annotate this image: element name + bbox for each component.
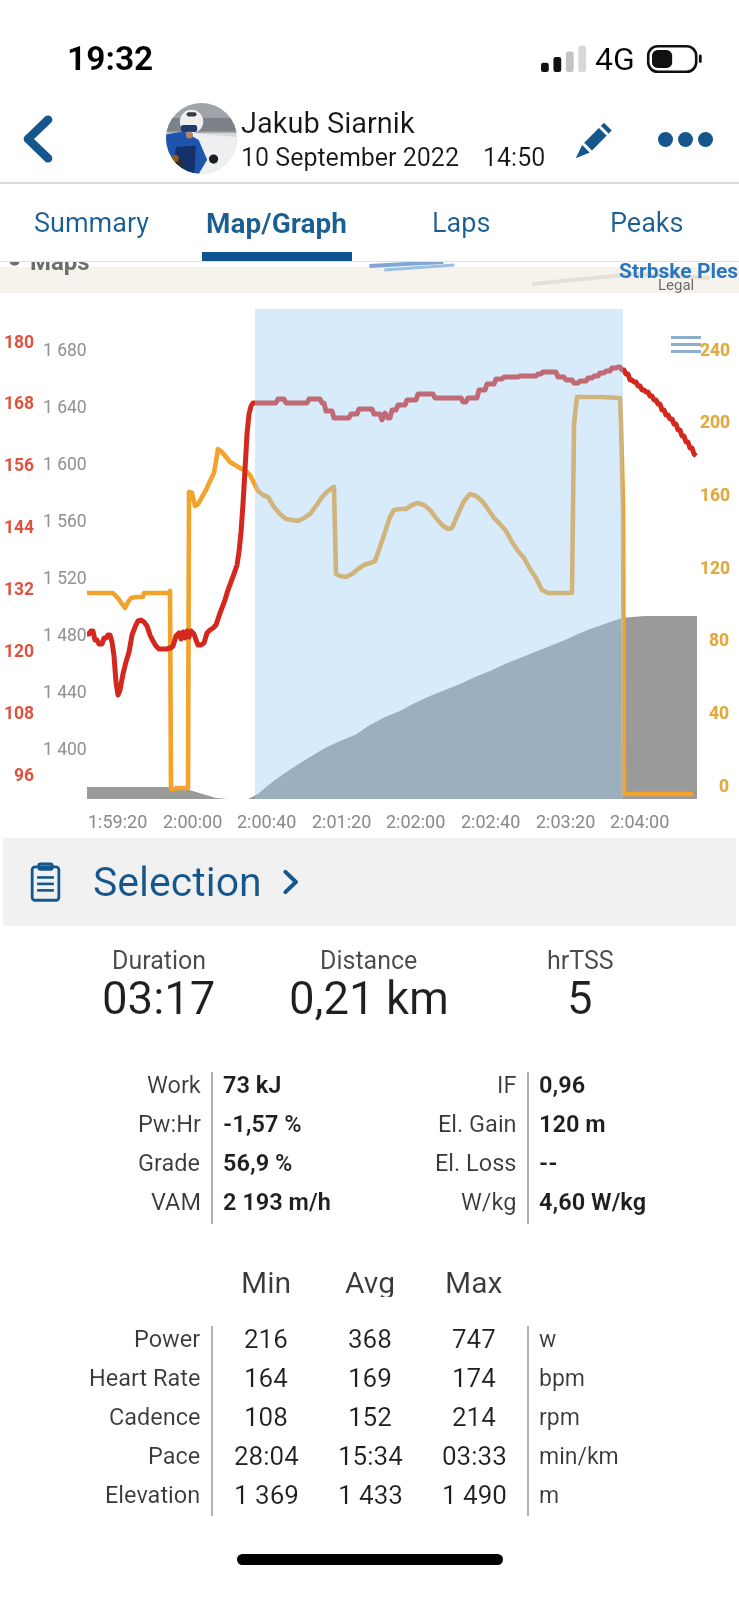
button[interactable]: More options [645,99,725,179]
staticText: 03:17 [102,972,216,1025]
staticText: 174 [452,1363,496,1393]
staticText: VAM [151,1188,201,1216]
button[interactable]: Summary [0,184,184,262]
staticText: 108 [244,1402,288,1432]
staticText: 10 September 2022 [241,143,459,172]
staticText: Max [445,1265,503,1297]
staticText: 4,60 W/kg [539,1188,647,1216]
staticText: W/kg [461,1188,517,1216]
staticText: 216 [244,1324,288,1354]
staticText: 180 [4,332,35,353]
staticText: 1 440 [43,682,87,703]
staticText: Min [241,1265,292,1297]
staticText: Peaks [610,207,684,239]
staticText: Distance [320,946,418,975]
staticText: El. Loss [435,1149,517,1177]
staticText: Summary [34,207,150,239]
staticText: 28:04 [234,1441,299,1471]
staticText: -1,57 % [223,1110,302,1138]
staticText: w [539,1326,557,1353]
staticText: min/km [539,1443,619,1470]
staticText: 2:04:00 [610,811,670,832]
staticText: Pw:Hr [138,1110,201,1138]
staticText: 1 680 [43,340,87,361]
staticText: 2:02:00 [386,811,446,832]
staticText: 15:34 [338,1441,403,1471]
staticText: rpm [539,1404,580,1431]
staticText: 1 520 [43,568,87,589]
staticText: Grade [138,1149,201,1177]
staticText: 169 [348,1363,392,1393]
staticText: Jakub Siarnik [241,106,415,140]
staticText: 40 [709,703,730,724]
staticText: 1:59:20 [88,811,148,832]
staticText: 1 480 [43,625,87,646]
button[interactable]: Chart options [664,329,708,359]
staticText: 03:33 [442,1441,507,1471]
staticText: 156 [4,455,35,476]
staticText: 1 400 [43,739,87,760]
staticText: 0 [719,776,730,797]
staticText: Laps [432,207,491,239]
staticText: 0,96 [539,1071,586,1099]
staticText: Power [134,1325,201,1353]
staticText: 1 600 [43,454,87,475]
staticText: 2:02:40 [461,811,521,832]
staticText: 144 [4,517,35,538]
staticText: 2 193 m/h [223,1188,331,1216]
staticText: hrTSS [547,946,614,975]
button[interactable]: Peaks [554,184,739,262]
staticText: 2:00:00 [163,811,223,832]
staticText: Cadence [109,1403,201,1431]
button[interactable]: Laps [369,184,554,262]
staticText: El. Gain [438,1110,517,1138]
staticText: 4G [595,40,635,78]
staticText: 56,9 % [223,1149,293,1177]
button[interactable]: Selection [3,838,736,926]
button[interactable]: Back [0,93,76,184]
staticText: 240 [700,340,730,361]
staticText: Duration [112,946,207,975]
staticText: 160 [700,485,730,506]
staticText: 1 369 [234,1480,299,1510]
staticText: Heart Rate [89,1364,201,1392]
staticText: bpm [539,1365,585,1392]
staticText: 1 433 [338,1480,403,1510]
staticText: Map/Graph [206,207,347,240]
staticText: 214 [452,1402,496,1432]
staticText: 1 490 [442,1480,507,1510]
staticText: 1 640 [43,397,87,418]
staticText: Work [147,1071,201,1099]
staticText: 120 m [539,1110,606,1138]
staticText: 152 [348,1402,392,1432]
staticText: m [539,1482,560,1509]
staticText: -- [539,1149,558,1177]
staticText: Avg [345,1265,396,1297]
staticText: 96 [14,765,35,786]
staticText: 14:50 [483,143,546,172]
staticText: 2:01:20 [312,811,372,832]
staticText: 5 [567,972,593,1025]
staticText: Elevation [105,1481,201,1509]
staticText: 368 [348,1324,392,1354]
staticText: IF [497,1071,517,1099]
button[interactable]: Edit [557,102,631,176]
staticText: 2:03:20 [536,811,596,832]
button[interactable]: Map/Graph [184,184,369,262]
staticText: 168 [4,393,35,414]
staticText: 73 kJ [223,1071,282,1099]
staticText: 120 [4,641,35,662]
staticText: Maps [30,262,90,276]
staticText: 747 [452,1324,496,1354]
staticText: Strbske Ples [619,262,739,284]
staticText: 1 560 [43,511,87,532]
staticText: Selection [93,858,262,906]
staticText: Pace [148,1442,201,1470]
staticText: 132 [4,579,35,600]
staticText: 164 [244,1363,288,1393]
staticText: Legal [658,276,695,293]
staticText: 19:32 [67,39,154,78]
staticText: 108 [4,703,35,724]
staticText: 2:00:40 [237,811,297,832]
staticText: 200 [700,412,730,433]
